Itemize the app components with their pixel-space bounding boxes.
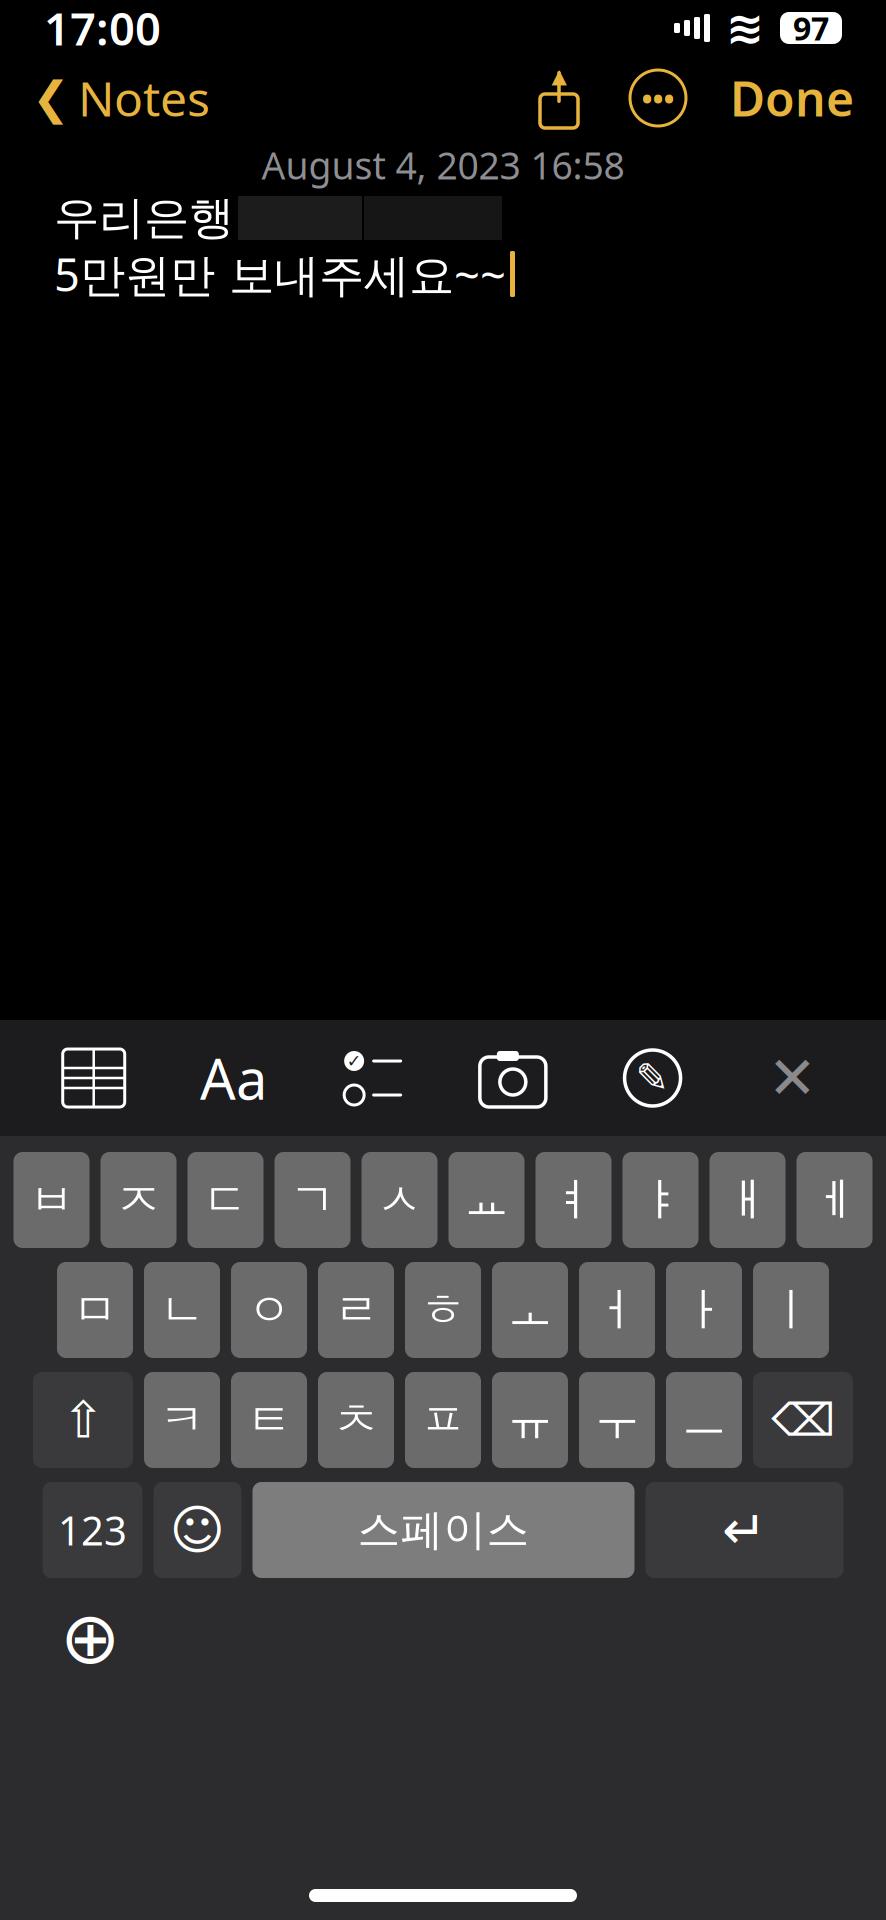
staticText: ↵ [722,1500,767,1560]
button[interactable]: Markup [607,1032,699,1124]
staticText: Notes [78,66,210,130]
staticText: ㄹ [333,1282,378,1338]
button[interactable]: ❮ [26,67,216,129]
button[interactable]: Share [526,65,592,131]
button[interactable]: 123 [42,1482,142,1578]
button[interactable]: ㅅ [361,1152,437,1248]
button[interactable]: ㅡ [666,1372,742,1468]
button[interactable]: Checklist [327,1032,419,1124]
staticText: ≋ [726,2,764,54]
staticText: ㅋ [159,1392,204,1448]
button[interactable]: Done [724,67,860,129]
button[interactable]: ㅗ [492,1262,568,1358]
staticText: 스페이스 [357,1504,529,1556]
button[interactable]: ㄹ [318,1262,394,1358]
staticText: ⊕ [60,1597,120,1679]
button[interactable]: More [630,70,686,126]
staticText: ㅐ [725,1172,770,1228]
staticText: ☺ [169,1500,225,1560]
staticText: 123 [58,1503,127,1556]
button[interactable]: Camera [467,1032,559,1124]
staticText: ㅓ [594,1282,639,1338]
button[interactable]: ㅑ [622,1152,698,1248]
staticText: ㄴ [159,1282,204,1338]
staticText: August 4, 2023 16:58 [261,140,624,190]
staticText: ㅅ [377,1172,422,1228]
staticText: ㅣ [768,1282,813,1338]
staticText: ㅜ [594,1392,639,1448]
button[interactable]: ㅏ [666,1262,742,1358]
staticText: ••• [641,78,674,117]
staticText: ㅡ [681,1392,726,1448]
staticText: ㅈ [116,1172,161,1228]
staticText: ㅔ [812,1172,857,1228]
staticText: ⌫ [771,1394,835,1446]
staticText: ㅍ [420,1392,465,1448]
button[interactable]: ㅜ [579,1372,655,1468]
button[interactable]: ㅛ [448,1152,524,1248]
staticText: ㅌ [246,1392,291,1448]
button[interactable]: ㅔ [796,1152,872,1248]
staticText: ㅇ [246,1282,291,1338]
staticText: ㅑ [638,1172,683,1228]
button[interactable]: ㄷ [187,1152,263,1248]
staticText: ✎ [636,1055,670,1101]
staticText: Done [730,66,854,130]
staticText: ㅁ [72,1282,117,1338]
staticText: ㅏ [681,1282,726,1338]
button[interactable]: Next keyboard [42,1590,138,1686]
button[interactable]: Return [645,1482,843,1578]
staticText: ㄱ [290,1172,335,1228]
staticText: ㅕ [551,1172,596,1228]
button[interactable]: ㅕ [535,1152,611,1248]
button[interactable]: ㅓ [579,1262,655,1358]
staticText: Aa [200,1041,267,1115]
button[interactable]: ㅍ [405,1372,481,1468]
button[interactable]: ㅈ [100,1152,176,1248]
staticText: ㅛ [464,1172,509,1228]
staticText: ㅂ [29,1172,74,1228]
button[interactable]: ㅣ [753,1262,829,1358]
button[interactable]: ㅋ [144,1372,220,1468]
staticText: ㅎ [420,1282,465,1338]
button[interactable]: Delete [753,1372,853,1468]
staticText: 97 [793,7,829,49]
staticText: ❮ [32,72,70,124]
staticText: ㄷ [203,1172,248,1228]
button[interactable]: ㅎ [405,1262,481,1358]
button[interactable]: ㄱ [274,1152,350,1248]
button[interactable]: ㅐ [709,1152,785,1248]
button[interactable]: ㅁ [57,1262,133,1358]
button[interactable]: Close keyboard [746,1032,838,1124]
staticText: 5만원만 보내주세요~~ [54,244,506,304]
staticText: 우리은행 [54,190,234,246]
button[interactable]: Format [187,1032,279,1124]
staticText: ✓ [347,1051,362,1071]
button[interactable]: Emoji [153,1482,241,1578]
button[interactable]: Table [48,1032,140,1124]
staticText: ▲ [551,65,566,87]
staticText: ㅠ [507,1392,552,1448]
button[interactable]: ㅠ [492,1372,568,1468]
button[interactable]: Space [252,1482,634,1578]
staticText: ⇧ [62,1391,104,1449]
button[interactable]: ㅊ [318,1372,394,1468]
staticText: ㅊ [333,1392,378,1448]
button[interactable]: ㅂ [13,1152,89,1248]
button[interactable]: ㄴ [144,1262,220,1358]
button[interactable]: Shift [33,1372,133,1468]
button[interactable]: ㅇ [231,1262,307,1358]
staticText: 17:00 [44,0,161,58]
staticText: ✕ [768,1045,817,1111]
staticText: ㅗ [507,1282,552,1338]
button[interactable]: ㅌ [231,1372,307,1468]
